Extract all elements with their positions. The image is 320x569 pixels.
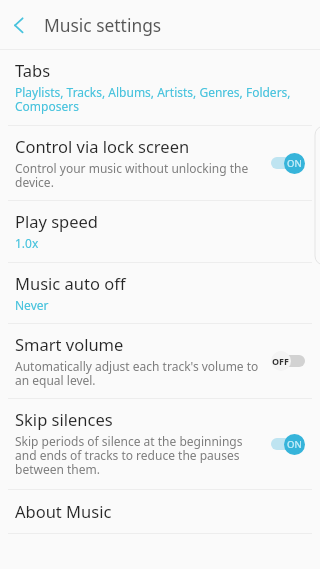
staticText: Never — [15, 297, 49, 313]
staticText: Skip silences — [15, 408, 113, 430]
staticText: Playlists, Tracks, Albums, Artists, Genr… — [15, 84, 295, 114]
button[interactable]: Toggle, off — [271, 350, 305, 372]
staticText: 1.0x — [15, 235, 39, 251]
button[interactable]: Toggle, on — [271, 433, 305, 455]
staticText: ON — [287, 438, 302, 451]
staticText: Smart volume — [15, 333, 124, 355]
staticText: Control your music without unlocking the… — [15, 160, 262, 190]
staticText: Music settings — [44, 13, 162, 37]
staticText: Music auto off — [15, 272, 126, 294]
staticText: Skip periods of silence at the beginning… — [15, 433, 262, 477]
staticText: OFF — [272, 355, 290, 367]
staticText: Tabs — [15, 59, 51, 81]
button[interactable]: Navigate up — [0, 0, 38, 49]
staticText: About Music — [15, 500, 112, 522]
button[interactable]: About Music — [0, 490, 320, 533]
staticText: ON — [287, 157, 302, 170]
button[interactable]: Smart volume — [0, 324, 320, 398]
button[interactable]: Toggle, on — [271, 152, 305, 174]
button[interactable]: Music auto off — [0, 263, 320, 323]
button[interactable]: Control via lock screen — [0, 126, 320, 200]
button[interactable]: Play speed — [0, 201, 320, 262]
button[interactable]: Tabs — [0, 50, 320, 125]
staticText: Automatically adjust each track's volume… — [15, 358, 262, 388]
staticText: Control via lock screen — [15, 135, 190, 157]
staticText: Play speed — [15, 210, 99, 232]
button[interactable]: Skip silences — [0, 399, 320, 489]
